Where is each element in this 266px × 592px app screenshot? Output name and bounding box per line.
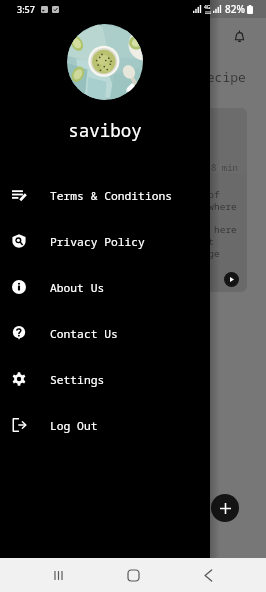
button[interactable]: Add recipe — [211, 494, 239, 522]
staticText: 82% — [225, 2, 245, 16]
button[interactable]: Privacy Policy — [0, 218, 210, 264]
button[interactable]: Recents — [44, 558, 73, 592]
button[interactable]: Settings — [0, 356, 210, 402]
button[interactable]: Play — [224, 272, 239, 287]
staticText: 3:57 — [17, 3, 35, 15]
staticText: Log Out — [50, 418, 98, 433]
staticText: 4G — [204, 4, 211, 11]
staticText: Lorem ip of amet con where — [157, 188, 237, 213]
staticText: Privacy Policy — [50, 234, 145, 249]
staticText: Pancakes 48 min — [157, 161, 239, 173]
staticText: Recipe — [199, 68, 246, 86]
button[interactable]: Home — [119, 558, 148, 592]
staticText: Contact Us — [50, 326, 118, 341]
staticText: saviboy — [0, 118, 210, 142]
button[interactable]: About Us — [0, 264, 210, 310]
staticText: Settings — [50, 372, 105, 387]
button[interactable]: Terms & Conditions — [0, 172, 210, 218]
button[interactable]: Log Out — [0, 402, 210, 448]
button[interactable]: Back — [194, 558, 223, 592]
button[interactable]: Pancakes 48 min — [148, 108, 247, 292]
staticText: tempor in here ut labor t et dolor ge — [157, 223, 237, 260]
button[interactable]: Profile picture — [67, 24, 143, 100]
button[interactable]: Contact Us — [0, 310, 210, 356]
staticText: Terms & Conditions — [50, 188, 173, 203]
staticText: About Us — [50, 280, 105, 295]
button[interactable]: Notifications — [228, 25, 250, 47]
